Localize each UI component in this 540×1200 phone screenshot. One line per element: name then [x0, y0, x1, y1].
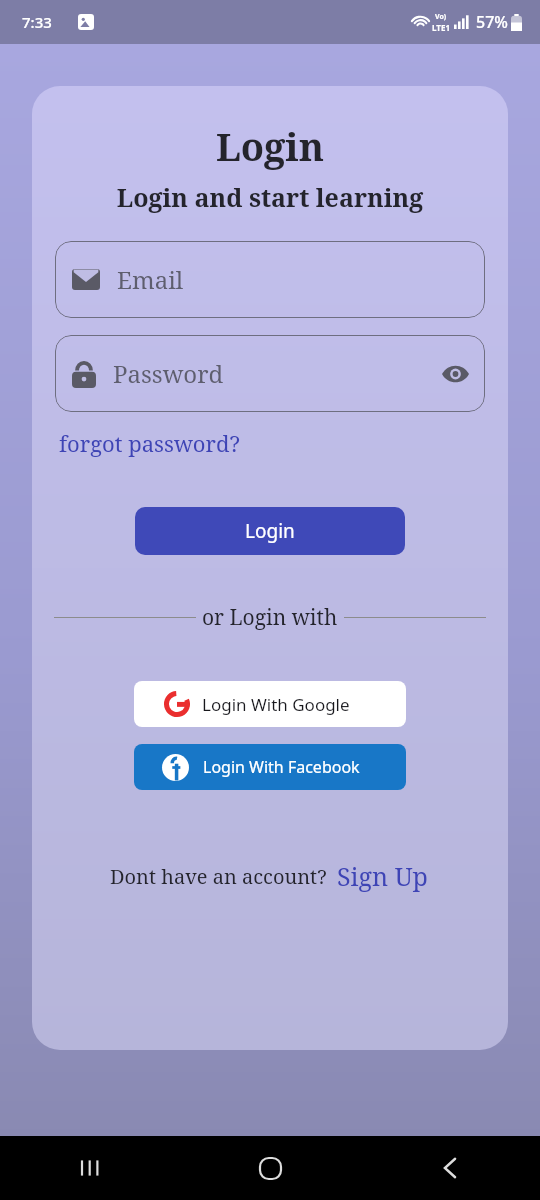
- button[interactable]: Password: [55, 335, 485, 412]
- button[interactable]: Recent apps: [0, 1136, 180, 1200]
- staticText: Sign Up: [337, 859, 428, 893]
- button[interactable]: Home: [180, 1136, 360, 1200]
- staticText: 57%: [476, 11, 508, 33]
- staticText: Login: [32, 120, 508, 172]
- staticText: or Login with: [202, 603, 338, 632]
- staticText: Password: [113, 357, 433, 390]
- button[interactable]: Login With Facebook: [134, 744, 406, 790]
- button[interactable]: Email: [55, 241, 485, 318]
- staticText: Login: [245, 518, 295, 544]
- staticText: Login and start learning: [32, 180, 508, 214]
- staticText: Vo): [435, 12, 447, 22]
- staticText: Dont have an account?: [110, 863, 327, 890]
- button[interactable]: forgot password?: [55, 426, 244, 460]
- staticText: LTE1: [432, 22, 450, 33]
- staticText: Email: [117, 263, 485, 296]
- button[interactable]: Login With Google: [134, 681, 406, 727]
- staticText: forgot password?: [59, 428, 240, 458]
- button[interactable]: Sign Up: [335, 859, 430, 893]
- staticText: 7:33: [22, 12, 52, 32]
- button[interactable]: Back: [360, 1136, 540, 1200]
- button[interactable]: Login: [135, 507, 405, 555]
- button[interactable]: Show password: [433, 352, 477, 396]
- staticText: Login With Google: [202, 693, 350, 716]
- staticText: Login With Facebook: [203, 756, 360, 778]
